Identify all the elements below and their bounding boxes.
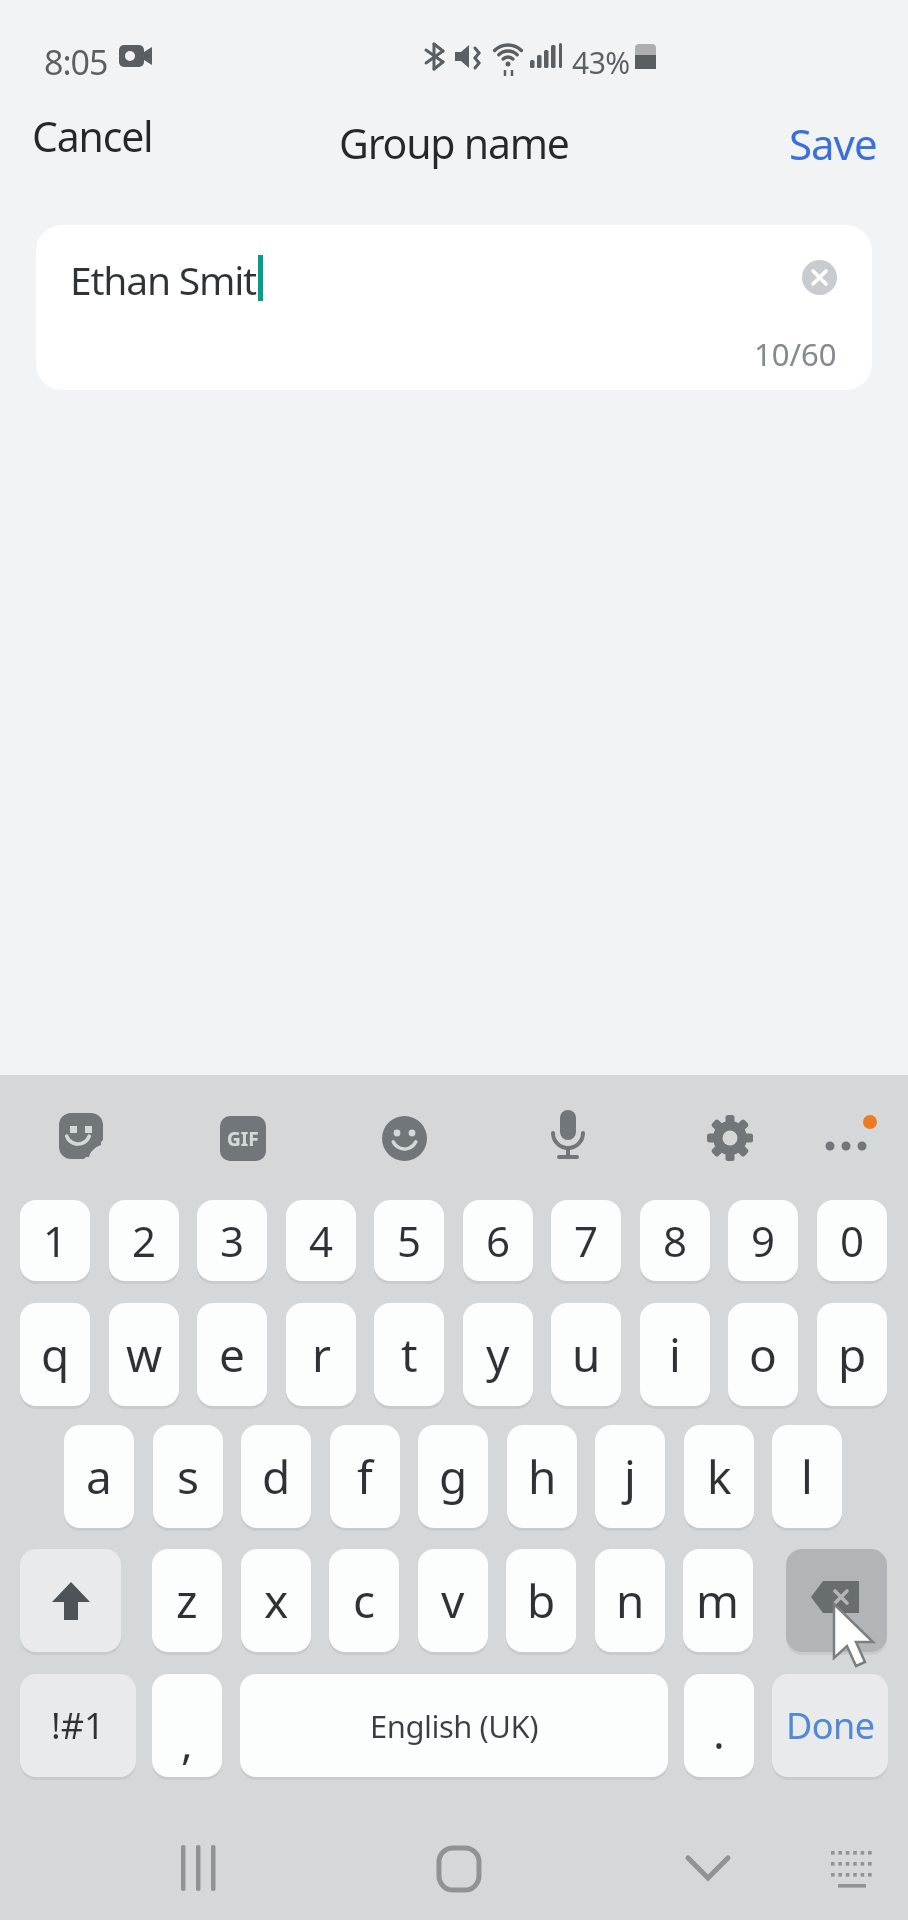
staticText: 4: [309, 1212, 334, 1269]
staticText: Done: [786, 1701, 875, 1750]
staticText: 1: [43, 1212, 68, 1269]
button[interactable]: k: [684, 1425, 754, 1528]
button[interactable]: d: [241, 1425, 311, 1528]
button[interactable]: .: [684, 1674, 754, 1777]
button[interactable]: English (UK): [240, 1674, 668, 1777]
button[interactable]: w: [109, 1303, 179, 1406]
button[interactable]: Cancel: [32, 108, 153, 164]
button[interactable]: m: [683, 1549, 753, 1652]
button[interactable]: [820, 1110, 880, 1160]
button[interactable]: [58, 1112, 104, 1158]
button[interactable]: !#1: [20, 1674, 136, 1777]
button[interactable]: e: [197, 1303, 267, 1406]
staticText: i: [669, 1323, 681, 1386]
button[interactable]: 7: [551, 1200, 621, 1281]
button[interactable]: [824, 1842, 880, 1894]
button[interactable]: y: [463, 1303, 533, 1406]
staticText: 6: [486, 1212, 511, 1269]
button[interactable]: i: [640, 1303, 710, 1406]
button[interactable]: q: [20, 1303, 90, 1406]
staticText: k: [707, 1445, 732, 1508]
button[interactable]: [668, 1838, 748, 1900]
staticText: u: [572, 1323, 601, 1386]
staticText: 3: [220, 1212, 245, 1269]
button[interactable]: n: [595, 1549, 665, 1652]
button[interactable]: v: [418, 1549, 488, 1652]
button[interactable]: 5: [374, 1200, 444, 1281]
button[interactable]: GIF: [220, 1116, 266, 1161]
staticText: 9: [751, 1212, 776, 1269]
staticText: m: [696, 1569, 740, 1632]
button[interactable]: p: [817, 1303, 887, 1406]
button[interactable]: h: [507, 1425, 577, 1528]
button[interactable]: z: [152, 1549, 222, 1652]
staticText: f: [357, 1445, 373, 1508]
button[interactable]: ,: [152, 1674, 222, 1777]
staticText: t: [401, 1323, 418, 1386]
staticText: a: [86, 1445, 112, 1508]
staticText: .: [713, 1702, 725, 1762]
button[interactable]: [786, 1549, 887, 1652]
staticText: x: [264, 1569, 289, 1632]
staticText: 8:05: [44, 39, 108, 85]
staticText: 10/60: [754, 333, 837, 373]
button[interactable]: 8: [640, 1200, 710, 1281]
staticText: Cancel: [32, 108, 153, 164]
button[interactable]: 6: [463, 1200, 533, 1281]
staticText: g: [439, 1445, 468, 1508]
staticText: 7: [574, 1212, 599, 1269]
button[interactable]: 0: [817, 1200, 887, 1281]
staticText: w: [126, 1323, 163, 1386]
staticText: n: [616, 1569, 645, 1632]
button[interactable]: [382, 1116, 427, 1161]
staticText: English (UK): [370, 1705, 538, 1747]
button[interactable]: 9: [728, 1200, 798, 1281]
button[interactable]: b: [506, 1549, 576, 1652]
staticText: e: [219, 1323, 245, 1386]
staticText: c: [353, 1569, 376, 1632]
staticText: r: [312, 1323, 331, 1386]
button[interactable]: t: [374, 1303, 444, 1406]
button[interactable]: [20, 1549, 121, 1652]
staticText: Ethan Smit: [70, 253, 257, 306]
staticText: 2: [132, 1212, 157, 1269]
button[interactable]: f: [330, 1425, 400, 1528]
staticText: v: [441, 1569, 465, 1632]
button[interactable]: s: [153, 1425, 223, 1528]
staticText: 0: [840, 1212, 865, 1269]
staticText: !#1: [51, 1701, 105, 1750]
button[interactable]: [548, 1108, 588, 1170]
button[interactable]: x: [241, 1549, 311, 1652]
staticText: GIF: [227, 1126, 259, 1152]
button[interactable]: [418, 1838, 498, 1900]
button[interactable]: u: [551, 1303, 621, 1406]
button[interactable]: [706, 1114, 754, 1162]
staticText: h: [528, 1445, 557, 1508]
staticText: ,: [181, 1712, 193, 1772]
button[interactable]: Save: [789, 115, 877, 172]
button[interactable]: o: [728, 1303, 798, 1406]
button[interactable]: [160, 1838, 240, 1900]
staticText: Group name: [339, 115, 569, 171]
staticText: 8: [663, 1212, 688, 1269]
button[interactable]: Ethan Smit: [36, 225, 872, 390]
staticText: y: [486, 1323, 510, 1386]
button[interactable]: g: [418, 1425, 488, 1528]
button[interactable]: l: [772, 1425, 842, 1528]
button[interactable]: [802, 260, 837, 295]
button[interactable]: 1: [20, 1200, 90, 1281]
button[interactable]: Done: [772, 1674, 888, 1777]
staticText: s: [177, 1445, 200, 1508]
button[interactable]: 3: [197, 1200, 267, 1281]
button[interactable]: 4: [286, 1200, 356, 1281]
button[interactable]: j: [595, 1425, 665, 1528]
button[interactable]: 2: [109, 1200, 179, 1281]
button[interactable]: r: [286, 1303, 356, 1406]
button[interactable]: a: [64, 1425, 134, 1528]
staticText: Save: [789, 115, 877, 172]
staticText: q: [41, 1323, 70, 1386]
staticText: j: [624, 1445, 636, 1508]
staticText: 5: [397, 1212, 422, 1269]
button[interactable]: c: [329, 1549, 399, 1652]
staticText: b: [527, 1569, 556, 1632]
